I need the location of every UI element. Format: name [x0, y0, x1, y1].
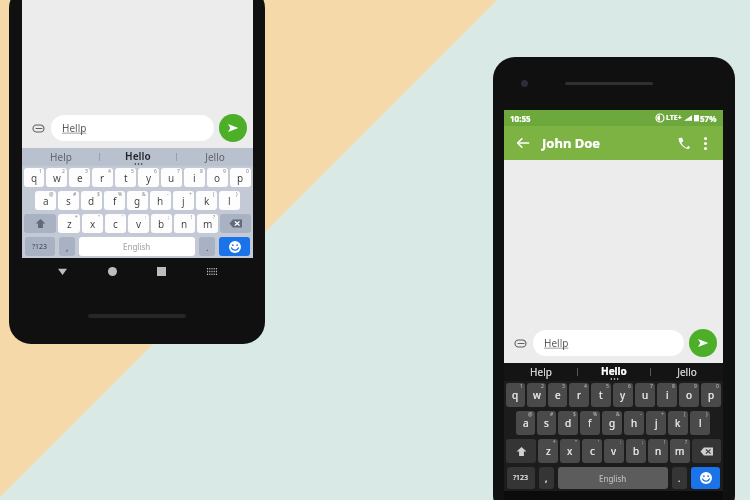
- button[interactable]: c: [105, 214, 126, 233]
- button[interactable]: Help: [504, 363, 577, 381]
- button[interactable]: Shift: [506, 439, 536, 463]
- button[interactable]: u: [635, 383, 655, 407]
- button[interactable]: m: [670, 439, 690, 463]
- button[interactable]: Hellp: [533, 330, 684, 356]
- button[interactable]: j: [646, 411, 666, 435]
- button[interactable]: z: [58, 214, 80, 233]
- button[interactable]: ?123: [507, 467, 535, 489]
- button[interactable]: f: [104, 191, 125, 210]
- button[interactable]: ,: [539, 467, 554, 489]
- button[interactable]: r: [569, 383, 589, 407]
- button[interactable]: l: [690, 411, 710, 435]
- button[interactable]: v: [604, 439, 624, 463]
- button[interactable]: u: [161, 168, 182, 187]
- button[interactable]: .: [672, 467, 687, 489]
- staticText: LTE+: [666, 113, 682, 123]
- button[interactable]: e: [69, 168, 90, 187]
- staticText: r: [100, 171, 105, 185]
- button[interactable]: More options: [695, 133, 715, 153]
- button[interactable]: j: [173, 191, 194, 210]
- staticText: p: [708, 388, 715, 402]
- button[interactable]: o: [207, 168, 228, 187]
- staticText: 5: [131, 168, 134, 175]
- button[interactable]: i: [657, 383, 677, 407]
- button[interactable]: m: [197, 214, 218, 233]
- button[interactable]: x: [82, 214, 103, 233]
- button[interactable]: q: [506, 383, 525, 407]
- button[interactable]: t: [115, 168, 136, 187]
- button[interactable]: d: [558, 411, 578, 435]
- button[interactable]: z: [538, 439, 558, 463]
- button[interactable]: b: [626, 439, 646, 463]
- button[interactable]: p: [701, 383, 721, 407]
- button[interactable]: Send: [219, 114, 247, 142]
- button[interactable]: p: [230, 168, 251, 187]
- button[interactable]: q: [24, 168, 44, 187]
- staticText: :: [145, 214, 147, 221]
- staticText: u: [642, 388, 649, 402]
- button[interactable]: c: [582, 439, 602, 463]
- button[interactable]: e: [548, 383, 567, 407]
- button[interactable]: s: [537, 411, 556, 435]
- button[interactable]: d: [81, 191, 102, 210]
- staticText: e: [77, 171, 83, 185]
- button[interactable]: y: [138, 168, 159, 187]
- button[interactable]: Backspace: [220, 214, 251, 233]
- button[interactable]: k: [196, 191, 217, 210]
- staticText: f: [588, 416, 592, 430]
- button[interactable]: ,: [59, 237, 75, 256]
- button[interactable]: Recents: [153, 263, 170, 280]
- button[interactable]: ?123: [25, 237, 55, 256]
- staticText: 1: [39, 168, 42, 175]
- button[interactable]: g: [602, 411, 622, 435]
- button[interactable]: Emoji: [219, 237, 250, 256]
- staticText: ,: [66, 241, 69, 253]
- button[interactable]: l: [219, 191, 240, 210]
- button[interactable]: n: [174, 214, 195, 233]
- button[interactable]: s: [58, 191, 79, 210]
- button[interactable]: a: [35, 191, 56, 210]
- button[interactable]: w: [527, 383, 546, 407]
- button[interactable]: English: [558, 467, 668, 489]
- button[interactable]: .: [199, 237, 215, 256]
- button[interactable]: Emoji: [691, 467, 720, 489]
- button[interactable]: i: [184, 168, 205, 187]
- button[interactable]: y: [613, 383, 633, 407]
- button[interactable]: h: [150, 191, 171, 210]
- button[interactable]: Send: [689, 329, 717, 357]
- button[interactable]: Attach: [28, 118, 48, 138]
- staticText: y: [620, 388, 626, 402]
- button[interactable]: Call: [673, 132, 695, 154]
- button[interactable]: n: [648, 439, 668, 463]
- button[interactable]: h: [624, 411, 644, 435]
- staticText: Jello: [677, 365, 697, 379]
- button[interactable]: English: [79, 237, 195, 256]
- button[interactable]: a: [516, 411, 535, 435]
- button[interactable]: k: [668, 411, 688, 435]
- button[interactable]: Backspace: [692, 439, 721, 463]
- button[interactable]: o: [679, 383, 699, 407]
- button[interactable]: Jello: [651, 363, 723, 381]
- staticText: q: [512, 388, 519, 402]
- button[interactable]: Shift: [24, 214, 56, 233]
- button[interactable]: x: [560, 439, 580, 463]
- button[interactable]: Back: [512, 132, 534, 154]
- button[interactable]: Switch keyboard: [203, 262, 221, 280]
- button[interactable]: t: [591, 383, 611, 407]
- button[interactable]: Home: [104, 263, 121, 280]
- button[interactable]: Help: [22, 148, 99, 166]
- button[interactable]: Attach: [510, 333, 530, 353]
- button[interactable]: Hellp: [51, 115, 214, 141]
- button[interactable]: Jello: [177, 148, 253, 166]
- button[interactable]: b: [151, 214, 172, 233]
- button[interactable]: g: [127, 191, 148, 210]
- button[interactable]: f: [580, 411, 600, 435]
- button[interactable]: w: [46, 168, 67, 187]
- button[interactable]: Back: [54, 263, 71, 280]
- button[interactable]: v: [128, 214, 149, 233]
- button[interactable]: r: [92, 168, 113, 187]
